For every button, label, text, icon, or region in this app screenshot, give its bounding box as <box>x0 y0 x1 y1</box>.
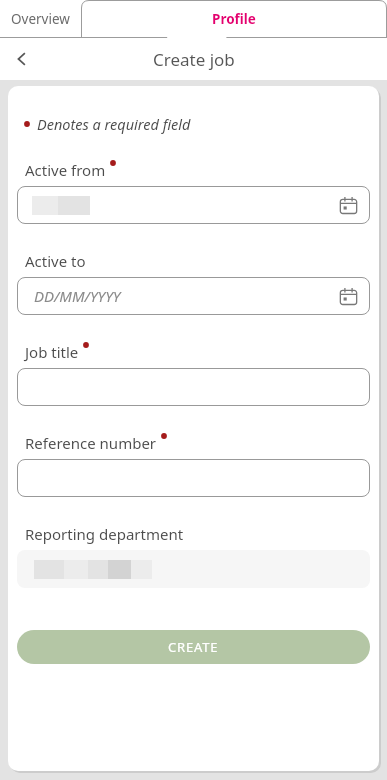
staticText: Job title <box>25 342 79 362</box>
button[interactable] <box>17 550 370 588</box>
staticText: Active to <box>25 251 86 271</box>
staticText: Create job <box>153 48 235 71</box>
staticText: Overview <box>11 10 70 28</box>
button[interactable]: Pick date <box>336 193 360 217</box>
staticText: Profile <box>212 10 256 28</box>
button[interactable]: Profile <box>81 0 387 38</box>
staticText: Reporting department <box>25 524 184 544</box>
button[interactable]: CREATE <box>17 630 370 664</box>
staticText: Reference number <box>25 433 157 453</box>
button[interactable]: DD/MM/YYYY <box>17 277 370 315</box>
staticText: Denotes a required field <box>37 114 191 134</box>
staticText: Active from <box>25 160 106 180</box>
button[interactable] <box>17 459 370 497</box>
button[interactable]: Pick date <box>17 186 370 224</box>
button[interactable] <box>17 368 370 406</box>
staticText: CREATE <box>168 638 219 656</box>
staticText: DD/MM/YYYY <box>34 286 121 306</box>
button[interactable]: Back <box>0 38 44 80</box>
button[interactable]: Overview <box>0 0 81 38</box>
button[interactable]: Pick date <box>336 284 360 308</box>
